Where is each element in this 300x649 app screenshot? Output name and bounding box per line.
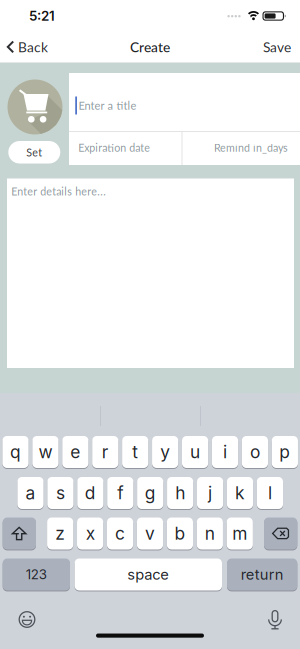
staticText: h [175, 483, 185, 503]
staticText: l [268, 483, 272, 503]
button[interactable]: s [47, 477, 73, 509]
staticText: n [205, 523, 215, 544]
staticText: t [132, 442, 138, 462]
staticText: u [190, 442, 200, 462]
button[interactable]: u [182, 436, 208, 468]
button[interactable]: Return [227, 558, 297, 590]
staticText: Set [26, 146, 42, 159]
button[interactable]: m [227, 517, 253, 549]
button[interactable]: Dictation [267, 610, 283, 630]
staticText: Save [263, 39, 291, 55]
button[interactable]: p [272, 436, 298, 468]
staticText: r [102, 442, 109, 462]
button[interactable]: Shift [3, 517, 36, 549]
button[interactable]: w [32, 436, 58, 468]
button[interactable]: t [122, 436, 148, 468]
staticText: g [145, 483, 156, 503]
staticText: w [38, 442, 52, 462]
staticText: m [232, 523, 247, 544]
button[interactable]: c [107, 517, 133, 549]
button[interactable]: Back [0, 0, 60, 20]
button[interactable]: y [152, 436, 178, 468]
button[interactable]: Delete [264, 517, 297, 549]
staticText: 5:21 [29, 8, 55, 24]
button[interactable]: k [227, 477, 253, 509]
button[interactable]: Numbers [3, 558, 70, 590]
button[interactable]: l [257, 477, 283, 509]
staticText: q [10, 442, 21, 462]
button[interactable]: Set [0, 0, 52, 22]
staticText: d [85, 483, 96, 503]
button[interactable]: a [17, 477, 44, 509]
button[interactable]: b [167, 517, 193, 549]
staticText: o [250, 442, 260, 462]
button[interactable]: d [77, 477, 103, 509]
staticText: a [25, 483, 35, 503]
staticText: s [56, 483, 65, 503]
button[interactable]: Enter a title [0, 0, 150, 18]
button[interactable]: q [2, 436, 29, 468]
button[interactable]: f [107, 477, 133, 509]
staticText: Remind in_days [214, 141, 288, 154]
staticText: p [279, 442, 290, 462]
button[interactable]: n [197, 517, 223, 549]
button[interactable]: Choose icon [0, 0, 300, 649]
button[interactable]: Enter details here [0, 0, 287, 189]
button[interactable]: i [212, 436, 238, 468]
staticText: k [235, 483, 245, 503]
staticText: Enter details here... [11, 185, 106, 198]
staticText: Enter a title [78, 99, 136, 112]
staticText: i [223, 442, 227, 462]
staticText: y [160, 442, 170, 462]
button[interactable]: o [242, 436, 268, 468]
staticText: b [174, 523, 185, 544]
staticText: return [241, 566, 284, 583]
staticText: Back [18, 39, 48, 55]
button[interactable]: Remind in days [0, 0, 110, 15]
staticText: Create [130, 39, 170, 55]
button[interactable]: Save [0, 0, 60, 20]
staticText: v [145, 523, 155, 544]
staticText: e [70, 442, 80, 462]
button[interactable]: v [137, 517, 163, 549]
staticText: x [86, 523, 95, 544]
button[interactable]: z [47, 517, 73, 549]
button[interactable]: h [167, 477, 193, 509]
button[interactable]: x [77, 517, 103, 549]
button[interactable]: g [137, 477, 163, 509]
staticText: Expiration date [78, 141, 150, 154]
staticText: j [208, 483, 212, 503]
staticText: f [117, 483, 123, 503]
staticText: space [127, 566, 169, 583]
button[interactable]: j [197, 477, 223, 509]
button[interactable]: e [62, 436, 88, 468]
button[interactable]: r [92, 436, 118, 468]
button[interactable]: space [75, 558, 222, 590]
button[interactable]: Expiration date [0, 0, 110, 15]
staticText: 123 [26, 567, 47, 582]
button[interactable]: Emoji [18, 611, 35, 628]
staticText: z [55, 523, 65, 544]
staticText: c [115, 523, 125, 544]
